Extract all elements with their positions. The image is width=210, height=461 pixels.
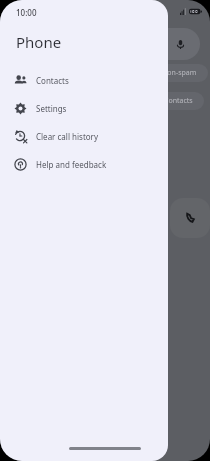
button[interactable]: Voice search bbox=[12, 28, 200, 60]
button[interactable]: Contacts bbox=[152, 92, 204, 110]
staticText: Contacts bbox=[36, 75, 69, 86]
other: Voice search bbox=[175, 39, 186, 50]
button[interactable]: Clear call history bbox=[0, 122, 168, 150]
staticText: Contacts bbox=[164, 96, 193, 106]
button[interactable]: Contacts bbox=[0, 66, 168, 94]
button[interactable]: Settings bbox=[0, 94, 168, 122]
staticText: Phone bbox=[16, 32, 62, 52]
button[interactable]: Help and feedback bbox=[0, 150, 168, 178]
button[interactable]: Non-spam bbox=[150, 64, 208, 82]
staticText: Settings bbox=[36, 103, 67, 114]
staticText: Help and feedback bbox=[36, 159, 107, 170]
staticText: 10:00 bbox=[16, 7, 37, 18]
button[interactable]: Dial pad bbox=[170, 198, 210, 238]
staticText: Clear call history bbox=[36, 131, 98, 142]
staticText: Non-spam bbox=[162, 68, 197, 78]
